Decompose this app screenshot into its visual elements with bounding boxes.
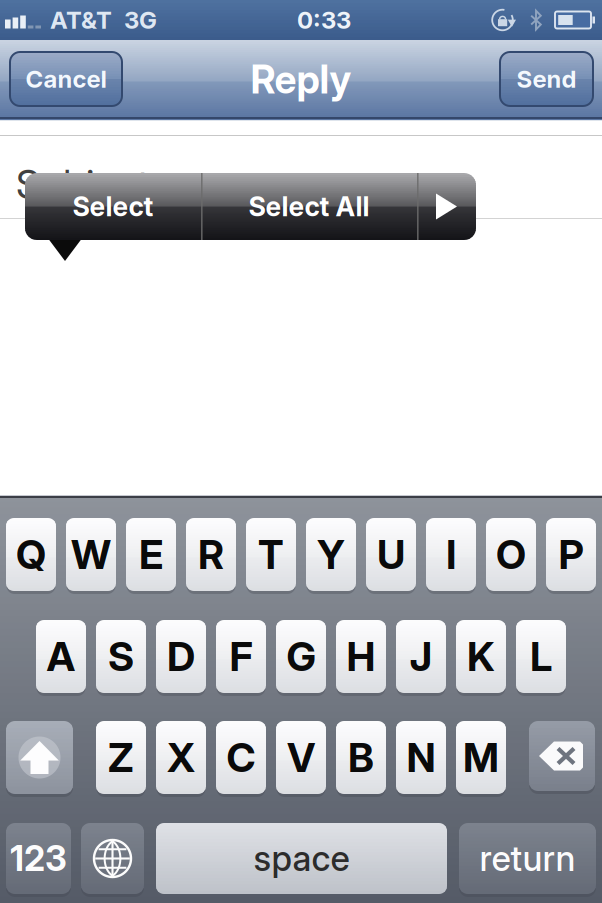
staticText: M (463, 733, 499, 782)
button[interactable]: B (336, 721, 386, 794)
staticText: Select (72, 190, 153, 223)
button[interactable]: R (186, 518, 236, 591)
button[interactable]: J (396, 620, 446, 693)
staticText: R (198, 530, 224, 579)
staticText: G (286, 632, 315, 681)
staticText: D (167, 632, 195, 681)
button[interactable]: O (486, 518, 536, 591)
button[interactable]: 123 (6, 823, 71, 894)
button[interactable]: L (516, 620, 566, 693)
button[interactable]: More options (417, 173, 476, 240)
staticText: 123 (10, 837, 67, 879)
staticText: Send (516, 64, 576, 93)
staticText: L (530, 632, 552, 681)
staticText: C (226, 733, 255, 782)
button[interactable]: space (156, 823, 447, 894)
staticText: J (409, 632, 432, 681)
staticText: F (229, 632, 252, 681)
button[interactable]: I (426, 518, 476, 591)
staticText: W (71, 530, 111, 579)
button[interactable]: V (276, 721, 326, 794)
button[interactable]: X (156, 721, 206, 794)
staticText: Select All (248, 190, 369, 223)
staticText: A (46, 632, 75, 681)
staticText: U (377, 530, 405, 579)
button[interactable]: return (459, 823, 596, 894)
button[interactable]: D (156, 620, 206, 693)
button[interactable]: E (126, 518, 176, 591)
staticText: Z (108, 733, 134, 782)
button[interactable]: F (216, 620, 266, 693)
button[interactable]: Cancel (10, 52, 122, 106)
button[interactable]: Shift (6, 721, 73, 794)
button[interactable]: Next keyboard (81, 823, 144, 894)
staticText: Y (317, 530, 345, 579)
staticText: Reply (250, 56, 351, 103)
button[interactable]: Q (6, 518, 56, 591)
staticText: N (406, 733, 435, 782)
staticText: T (258, 530, 284, 579)
staticText: P (558, 530, 583, 579)
button[interactable]: Y (306, 518, 356, 591)
staticText: V (287, 733, 315, 782)
button[interactable]: A (36, 620, 86, 693)
staticText: O (496, 530, 526, 579)
button[interactable]: U (366, 518, 416, 591)
button[interactable]: P (546, 518, 596, 591)
button[interactable]: Select All (201, 173, 417, 240)
staticText: AT&T (50, 5, 112, 34)
staticText: space (253, 837, 349, 879)
staticText: 0:33 (297, 5, 351, 34)
staticText: 3G (124, 5, 157, 34)
button[interactable]: G (276, 620, 326, 693)
button[interactable]: Send (500, 52, 593, 106)
button[interactable]: Select (25, 173, 201, 240)
staticText: E (139, 530, 163, 579)
button[interactable]: Z (96, 721, 146, 794)
staticText: S (108, 632, 134, 681)
button[interactable]: Delete (529, 721, 595, 791)
staticText: B (348, 733, 374, 782)
staticText: Subject: (16, 160, 159, 208)
staticText: H (346, 632, 375, 681)
staticText: Cancel (25, 64, 106, 93)
button[interactable]: C (216, 721, 266, 794)
button[interactable]: K (456, 620, 506, 693)
staticText: Q (16, 530, 46, 579)
button[interactable]: W (66, 518, 116, 591)
staticText: I (446, 530, 456, 579)
button[interactable]: T (246, 518, 296, 591)
button[interactable]: N (396, 721, 446, 794)
staticText: X (167, 733, 195, 782)
staticText: K (467, 632, 495, 681)
button[interactable]: H (336, 620, 386, 693)
staticText: return (479, 837, 575, 879)
button[interactable]: M (456, 721, 506, 794)
button[interactable]: S (96, 620, 146, 693)
